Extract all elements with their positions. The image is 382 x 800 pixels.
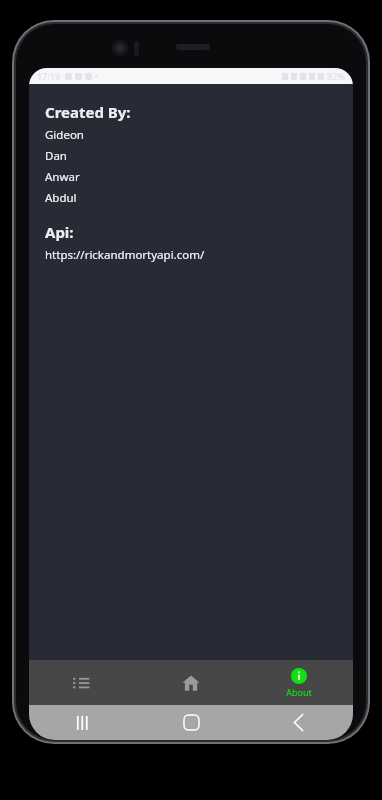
staticText: 82%: [327, 70, 345, 82]
staticText: About: [286, 686, 312, 698]
staticText: Api:: [45, 222, 74, 242]
staticText: Gideon: [45, 127, 84, 143]
button[interactable]: List: [29, 660, 137, 705]
staticText: Dan: [45, 148, 67, 164]
button[interactable]: About: [245, 660, 353, 705]
staticText: Abdul: [45, 190, 77, 206]
staticText: https://rickandmortyapi.com/: [45, 247, 205, 263]
button[interactable]: Back: [245, 705, 353, 740]
button[interactable]: Home: [137, 660, 245, 705]
button[interactable]: Home: [137, 705, 245, 740]
staticText: Anwar: [45, 169, 80, 185]
staticText: 17:19: [37, 70, 61, 82]
staticText: Created By:: [45, 102, 131, 122]
button[interactable]: Recent apps: [29, 705, 137, 740]
